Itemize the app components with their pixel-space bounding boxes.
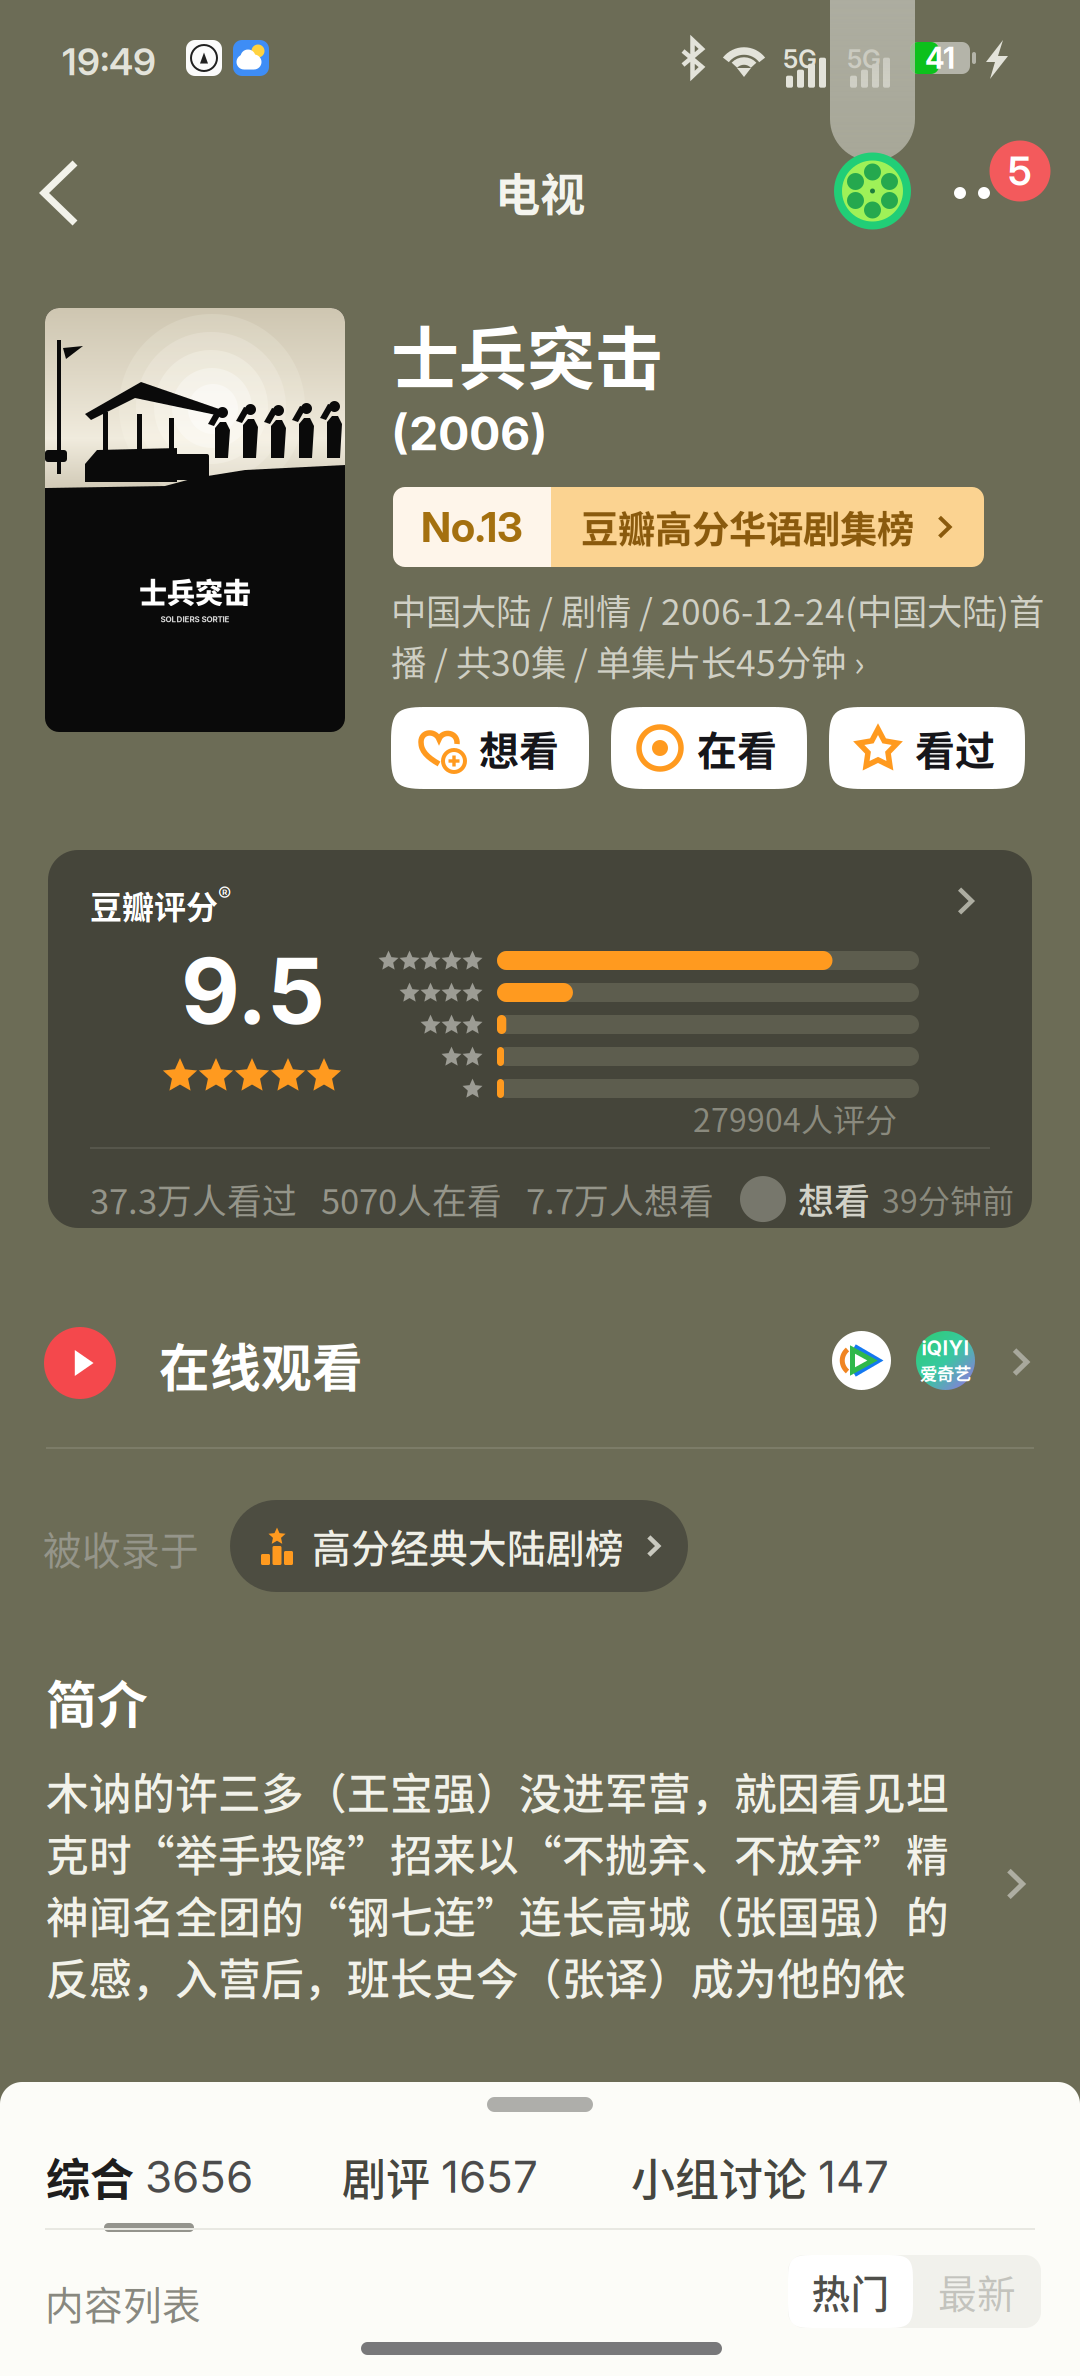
staticText: 小组讨论 <box>631 2145 807 2209</box>
staticText: 5G <box>847 44 881 74</box>
staticText: 最新 <box>938 2263 1016 2319</box>
button[interactable]: 在线观看 <box>0 1287 1080 1439</box>
button[interactable]: 看过 <box>829 707 1025 789</box>
staticText: 高分经典大陆剧榜 <box>312 1518 624 1574</box>
staticText: 看过 <box>915 719 995 777</box>
staticText: 279904人评分 <box>693 1095 897 1141</box>
staticText: 想看 <box>479 719 559 777</box>
staticText: 在线观看 <box>159 1328 363 1401</box>
staticText: 39分钟前 <box>882 1176 1014 1222</box>
staticText: 3656 <box>145 2150 253 2203</box>
staticText: 内容列表 <box>45 2275 201 2331</box>
staticText: 剧评 <box>342 2145 430 2209</box>
staticText: 豆瓣评分 <box>90 882 218 928</box>
staticText: 中国大陆 / 剧情 / 2006-12-24(中国大陆)首播 / 共30集 / … <box>391 584 1044 686</box>
button[interactable]: 最新 <box>913 2255 1041 2328</box>
button[interactable]: More options <box>934 155 1010 231</box>
staticText: 1657 <box>441 2150 538 2203</box>
button[interactable]: Notifications, 5 unread <box>984 135 1056 207</box>
staticText: 热门 <box>811 2263 889 2319</box>
button[interactable]: 热门 <box>788 2255 913 2328</box>
staticText: 5070人在看 <box>321 1174 502 1224</box>
staticText: 41 <box>925 40 955 76</box>
button[interactable]: 高分经典大陆剧榜 <box>230 1500 688 1592</box>
button[interactable]: 在看 <box>611 707 807 789</box>
staticText: 电视 <box>495 159 585 225</box>
staticText: 7.7万人想看 <box>526 1174 714 1224</box>
staticText: 简介 <box>46 1665 148 1738</box>
staticText: 5G <box>783 44 817 74</box>
staticText: 9.5 <box>181 936 325 1046</box>
button[interactable]: 想看 <box>391 707 589 789</box>
staticText: iQIYI <box>921 1336 969 1360</box>
staticText: 19:49 <box>62 39 156 84</box>
staticText: 37.3万人看过 <box>90 1174 297 1224</box>
staticText: No.13 <box>421 502 523 552</box>
staticText: 木讷的许三多（王宝强）没进军营，就因看见坦克时“举手投降”招来以“不抛弃、不放弃… <box>46 1760 949 2007</box>
staticText: 想看 <box>798 1173 870 1225</box>
button[interactable]: 剧评 <box>336 2135 544 2219</box>
button[interactable]: No.13 <box>393 487 984 567</box>
button[interactable]: 综合 <box>40 2135 259 2219</box>
staticText: 综合 <box>46 2145 134 2209</box>
button[interactable]: 小组讨论 <box>625 2135 895 2219</box>
staticText: 147 <box>818 2150 889 2203</box>
staticText: SOLDIERS SORTIE <box>160 614 229 624</box>
staticText: ® <box>218 882 231 906</box>
staticText: (2006) <box>391 405 548 461</box>
staticText: 豆瓣高分华语剧集榜 <box>581 500 914 554</box>
staticText: 士兵突击 <box>391 305 663 403</box>
staticText: 被收录于 <box>43 1520 199 1576</box>
button[interactable]: Back <box>27 135 127 251</box>
staticText: 5 <box>1008 147 1032 195</box>
staticText: 在看 <box>697 719 777 777</box>
staticText: 士兵突击 <box>139 571 251 611</box>
button[interactable]: 豆瓣评分 <box>48 850 1032 1228</box>
staticText: 爱奇艺 <box>920 1360 971 1385</box>
